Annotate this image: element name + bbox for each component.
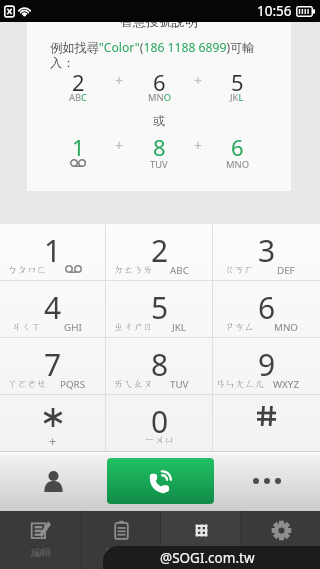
staticText: 6 bbox=[153, 67, 166, 97]
button[interactable]: 3 bbox=[213, 224, 320, 280]
staticText: 7 bbox=[44, 344, 62, 385]
button[interactable]: 記事本 bbox=[81, 511, 160, 569]
staticText: 3 bbox=[258, 230, 276, 271]
button[interactable]: 6 bbox=[213, 281, 320, 337]
staticText: 2 bbox=[151, 230, 169, 271]
button[interactable]: More options bbox=[214, 451, 320, 511]
staticText: ABC bbox=[69, 91, 88, 104]
staticText: JKL bbox=[172, 321, 186, 334]
staticText: ㄞㄟㄠㄡ bbox=[114, 378, 153, 390]
button[interactable]: 通話設定 bbox=[241, 511, 320, 569]
staticText: + bbox=[49, 433, 57, 450]
staticText: 或 bbox=[153, 113, 165, 128]
staticText: ㄓㄔㄕㄖ bbox=[114, 321, 153, 333]
button[interactable]: 7 bbox=[0, 338, 106, 394]
staticText: + bbox=[115, 136, 124, 155]
staticText: TUV bbox=[170, 378, 189, 391]
staticText: MNO bbox=[226, 158, 249, 171]
staticText: MNO bbox=[274, 321, 298, 334]
button[interactable]: 0 bbox=[106, 395, 213, 451]
staticText: ㄚㄛㄜㄝ bbox=[8, 378, 47, 390]
staticText: + bbox=[194, 136, 203, 155]
staticText: ABC bbox=[170, 264, 189, 277]
staticText: ㄐㄑㄒ bbox=[12, 321, 42, 333]
staticText: 記事本 bbox=[106, 546, 136, 559]
staticText: ㄢㄣㄤㄥㄦ bbox=[216, 378, 265, 390]
staticText: ㄍㄎㄏ bbox=[225, 264, 255, 276]
staticText: 2 bbox=[72, 67, 85, 97]
staticText: 8 bbox=[153, 132, 166, 162]
button[interactable]: 1 bbox=[0, 224, 106, 280]
button[interactable]: 4 bbox=[0, 281, 106, 337]
button[interactable]: 編輯 bbox=[0, 511, 80, 569]
button[interactable]: 2 bbox=[106, 224, 213, 280]
button[interactable]: Contacts bbox=[0, 451, 106, 511]
button[interactable]: Call bbox=[107, 458, 214, 504]
button[interactable]: + bbox=[0, 395, 106, 451]
staticText: 4 bbox=[44, 287, 62, 328]
staticText: ㄧㄨㄩ bbox=[145, 434, 175, 446]
staticText: 6 bbox=[231, 132, 244, 162]
staticText: 9 bbox=[258, 344, 276, 385]
staticText: + bbox=[194, 71, 203, 90]
staticText: TUV bbox=[150, 158, 168, 171]
staticText: 5 bbox=[231, 67, 244, 97]
staticText: 智慧搜號說明 bbox=[120, 13, 198, 29]
staticText: ㄉㄊㄋㄌ bbox=[114, 264, 153, 276]
staticText: JKL bbox=[230, 91, 244, 104]
staticText: WXYZ bbox=[273, 378, 300, 391]
staticText: DEF bbox=[277, 264, 295, 277]
staticText: ㄗㄘㄙ bbox=[225, 321, 255, 333]
staticText: MNO bbox=[148, 91, 171, 104]
button[interactable]: 9 bbox=[213, 338, 320, 394]
staticText: 1 bbox=[44, 230, 62, 271]
button[interactable] bbox=[213, 395, 320, 451]
button[interactable]: 8 bbox=[106, 338, 213, 394]
staticText: 撥號鍵盤 bbox=[181, 546, 221, 559]
staticText: 5 bbox=[151, 287, 169, 328]
button[interactable]: 5 bbox=[106, 281, 213, 337]
staticText: 8 bbox=[151, 344, 169, 385]
staticText: + bbox=[115, 71, 124, 90]
button[interactable]: 撥號鍵盤 bbox=[161, 511, 240, 569]
staticText: 0 bbox=[151, 401, 169, 442]
staticText: 編輯 bbox=[31, 546, 51, 559]
staticText: ㄅㄆㄇㄈ bbox=[8, 264, 47, 276]
staticText: GHI bbox=[64, 321, 82, 334]
staticText: PQRS bbox=[60, 378, 86, 391]
staticText: 1 bbox=[72, 132, 85, 162]
staticText: 10:56 bbox=[257, 2, 292, 20]
staticText: 6 bbox=[258, 287, 276, 328]
staticText: 例如找尋"Color"(186 1188 6899)可輸入： bbox=[50, 39, 262, 71]
staticText: @SOGI.com.tw bbox=[160, 549, 255, 567]
